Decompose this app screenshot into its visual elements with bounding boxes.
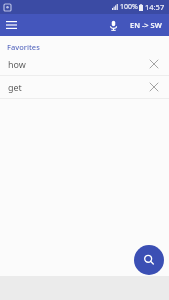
staticText: EN -> SW bbox=[130, 20, 162, 30]
button[interactable]: Voice input bbox=[103, 15, 123, 35]
button[interactable]: get bbox=[0, 76, 169, 98]
button[interactable]: EN -> SW bbox=[126, 16, 166, 34]
staticText: Favorites bbox=[7, 42, 40, 52]
button[interactable]: Search bbox=[134, 245, 164, 275]
button[interactable]: Remove how bbox=[146, 56, 162, 72]
staticText: 14:57 bbox=[145, 2, 165, 12]
staticText: how bbox=[8, 58, 26, 70]
button[interactable]: Remove get bbox=[146, 79, 162, 95]
staticText: get bbox=[8, 81, 22, 93]
button[interactable]: how bbox=[0, 53, 169, 75]
staticText: 100% bbox=[120, 2, 138, 12]
button[interactable]: Open navigation menu bbox=[0, 14, 22, 36]
